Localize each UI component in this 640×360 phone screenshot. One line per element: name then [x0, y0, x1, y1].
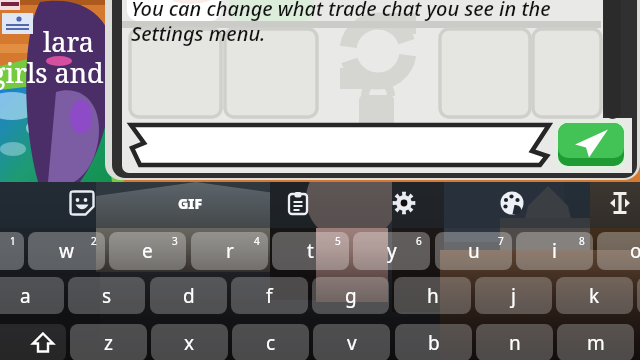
staticText: j — [511, 283, 516, 309]
button[interactable]: y — [353, 232, 430, 270]
staticText: i — [552, 238, 557, 264]
button[interactable]: Theme — [493, 184, 531, 222]
staticText: s — [102, 283, 112, 309]
button[interactable]: e — [109, 232, 186, 270]
button[interactable]: Settings — [385, 184, 423, 222]
staticText: x — [184, 330, 195, 356]
button[interactable]: s — [68, 277, 145, 314]
button[interactable]: c — [232, 324, 309, 360]
button[interactable]: Move cursor — [601, 184, 639, 222]
button[interactable]: m — [557, 324, 634, 360]
staticText: 3 — [172, 234, 178, 248]
button[interactable]: i — [516, 232, 593, 270]
staticText: 8 — [579, 234, 585, 248]
staticText: 6 — [416, 234, 422, 248]
button[interactable]: b — [395, 324, 472, 360]
button[interactable]: g — [312, 277, 389, 314]
button[interactable]: Message box — [129, 122, 551, 168]
staticText: 4 — [254, 234, 260, 248]
staticText: girls and — [0, 54, 104, 91]
staticText: n — [509, 330, 521, 356]
staticText: g — [345, 283, 357, 309]
button[interactable]: o — [597, 232, 640, 270]
button[interactable]: k — [556, 277, 633, 314]
button[interactable]: r — [191, 232, 268, 270]
button[interactable]: f — [231, 277, 308, 314]
button[interactable]: Send — [555, 120, 627, 169]
button[interactable]: Shift — [0, 324, 66, 360]
button[interactable]: l — [637, 277, 640, 314]
staticText: k — [589, 283, 600, 309]
button[interactable]: n — [476, 324, 553, 360]
staticText: 5 — [335, 234, 341, 248]
staticText: u — [468, 238, 480, 264]
staticText: b — [428, 330, 440, 356]
staticText: z — [104, 330, 113, 356]
button[interactable]: x — [151, 324, 228, 360]
staticText: o — [630, 238, 640, 264]
button[interactable]: z — [70, 324, 147, 360]
staticText: t — [307, 238, 314, 264]
button[interactable]: v — [313, 324, 390, 360]
button[interactable]: Clipboard — [279, 184, 317, 222]
staticText: d — [183, 283, 195, 309]
staticText: c — [266, 330, 276, 356]
staticText: w — [59, 238, 74, 264]
staticText: 2 — [91, 234, 97, 248]
button[interactable]: a — [0, 277, 64, 314]
button[interactable]: GIF — [169, 189, 211, 217]
staticText: h — [427, 283, 439, 309]
staticText: 1 — [10, 234, 16, 248]
staticText: f — [266, 283, 273, 309]
button[interactable]: u — [435, 232, 512, 270]
staticText: y — [387, 238, 397, 264]
button[interactable]: h — [394, 277, 471, 314]
staticText: Settings menu. — [131, 20, 266, 47]
button[interactable]: d — [150, 277, 227, 314]
staticText: lara — [43, 23, 94, 60]
button[interactable]: w — [28, 232, 105, 270]
staticText: You can change what trade chat you see i… — [131, 0, 551, 22]
staticText: e — [142, 238, 153, 264]
button[interactable]: Stickers — [63, 184, 101, 222]
staticText: GIF — [178, 194, 203, 213]
button[interactable]: t — [272, 232, 349, 270]
button[interactable]: j — [475, 277, 552, 314]
staticText: v — [347, 330, 357, 356]
staticText: 7 — [498, 234, 504, 248]
staticText: a — [20, 283, 31, 309]
button[interactable]: q — [0, 232, 24, 270]
staticText: r — [226, 238, 234, 264]
staticText: m — [587, 330, 605, 356]
